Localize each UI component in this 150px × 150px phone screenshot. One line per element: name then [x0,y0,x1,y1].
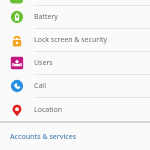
staticText: Location [34,105,63,115]
button[interactable]: Users [0,52,150,74]
button[interactable]: Accounts & services [0,123,150,150]
button[interactable]: Lock screen & security [0,29,150,51]
staticText: Accounts & services [10,132,77,142]
staticText: Battery [34,12,58,22]
button[interactable]: Location [0,98,150,121]
button[interactable]: Storage [0,0,150,5]
staticText: Call [34,81,46,91]
button[interactable]: Call [0,75,150,97]
button[interactable]: Battery [0,6,150,28]
staticText: Users [34,58,53,68]
staticText: Lock screen & security [34,35,108,45]
